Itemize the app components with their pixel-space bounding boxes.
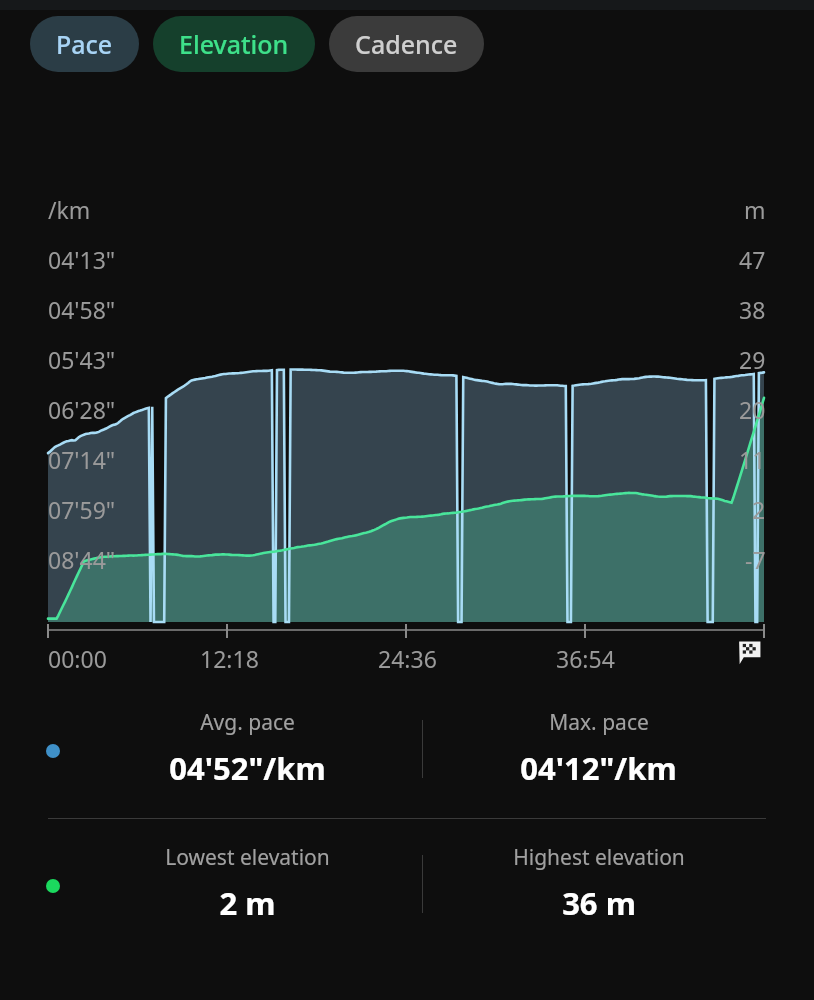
staticText: 29 <box>739 344 766 375</box>
staticText: 07'14" <box>48 444 116 475</box>
staticText: 07'59" <box>48 494 116 525</box>
button[interactable]: Lowest elevation <box>72 843 422 924</box>
button[interactable]: Avg. pace <box>72 708 422 789</box>
button[interactable]: Pace <box>30 16 139 72</box>
button[interactable]: Max. pace <box>423 708 774 789</box>
button[interactable]: Highest elevation <box>423 843 774 924</box>
staticText: 08'44" <box>48 544 116 575</box>
staticText: 2 <box>752 494 766 525</box>
staticText: Max. pace <box>549 708 649 737</box>
staticText: Highest elevation <box>513 843 685 872</box>
staticText: Avg. pace <box>200 708 295 737</box>
staticText: 11 <box>739 444 766 475</box>
staticText: 47 <box>739 244 766 275</box>
staticText: 04'58" <box>48 294 116 325</box>
staticText: /km <box>48 194 91 225</box>
staticText: 06'28" <box>48 394 116 425</box>
staticText: 12:18 <box>200 643 259 674</box>
staticText: 04'12"/km <box>520 747 677 789</box>
button[interactable]: Elevation <box>153 16 315 72</box>
staticText: 24:36 <box>378 643 437 674</box>
staticText: 38 <box>739 294 766 325</box>
staticText: -7 <box>745 544 766 575</box>
staticText: Elevation <box>179 27 289 61</box>
staticText: 2 m <box>219 882 276 924</box>
staticText: Cadence <box>355 27 458 61</box>
staticText: 04'52"/km <box>169 747 326 789</box>
button[interactable]: Finish <box>736 640 762 666</box>
staticText: Lowest elevation <box>165 843 330 872</box>
button[interactable]: Cadence <box>329 16 484 72</box>
staticText: 04'13" <box>48 244 116 275</box>
staticText: 00:00 <box>48 643 107 674</box>
staticText: m <box>744 194 766 225</box>
staticText: 36 m <box>562 882 636 924</box>
staticText: 05'43" <box>48 344 116 375</box>
staticText: 36:54 <box>556 643 615 674</box>
staticText: Pace <box>56 27 113 61</box>
staticText: 20 <box>739 394 766 425</box>
